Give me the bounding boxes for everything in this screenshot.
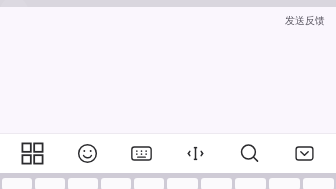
button[interactable] [35, 178, 65, 189]
button[interactable] [201, 178, 232, 189]
button[interactable] [101, 178, 131, 189]
button[interactable]: 发送反馈 [282, 12, 328, 29]
button[interactable]: Move cursor [173, 134, 217, 173]
button[interactable] [2, 178, 32, 189]
staticText: 发送反馈 [285, 14, 325, 27]
button[interactable] [68, 178, 98, 189]
button[interactable] [235, 178, 266, 189]
button[interactable]: Apps [10, 134, 54, 173]
button[interactable]: Search [227, 134, 271, 173]
button[interactable] [134, 178, 164, 189]
button[interactable]: Keyboard [119, 134, 163, 173]
button[interactable] [269, 178, 300, 189]
button[interactable] [303, 178, 334, 189]
button[interactable]: Emoji [65, 134, 109, 173]
button[interactable]: Hide keyboard [282, 134, 326, 173]
button[interactable] [167, 178, 198, 189]
